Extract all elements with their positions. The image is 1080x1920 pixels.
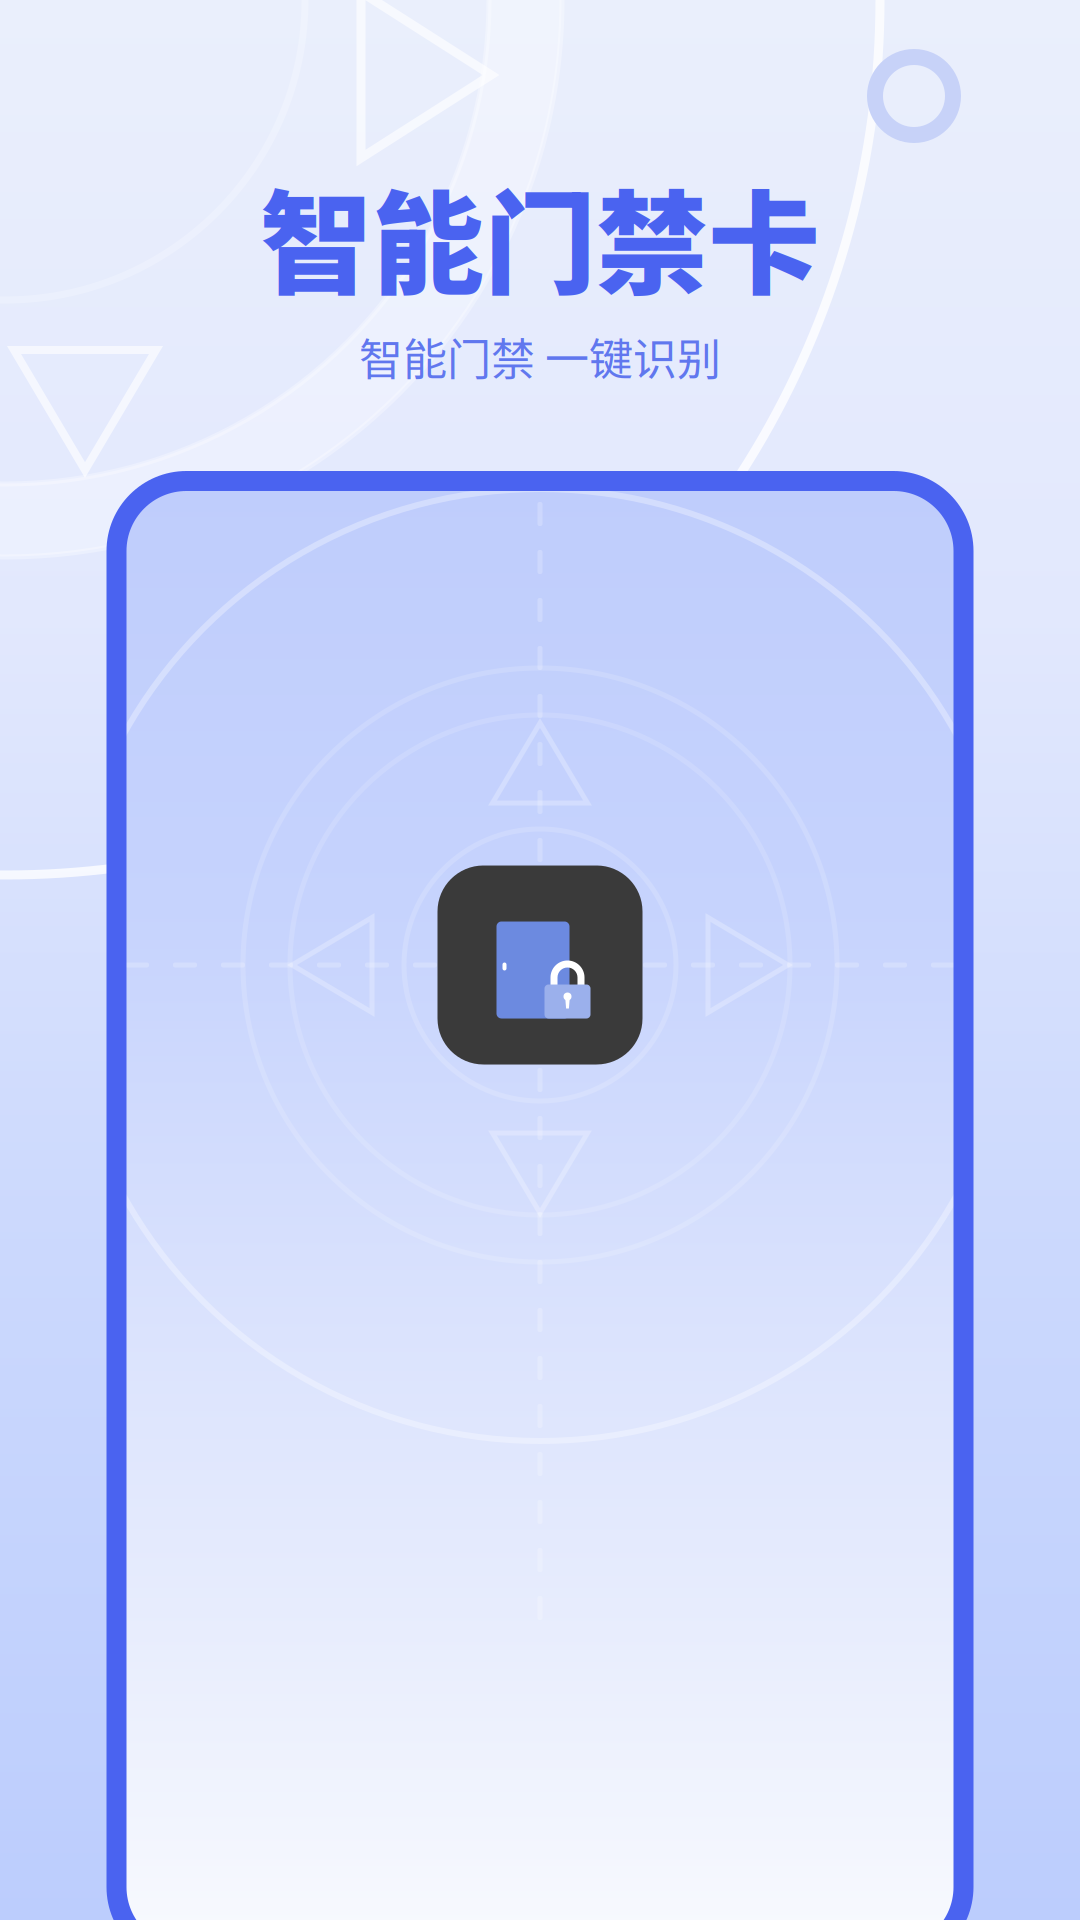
staticText: 智能门禁卡 xyxy=(260,155,820,317)
staticText: 智能门禁 一键识别 xyxy=(359,324,721,388)
button[interactable]: 智能门禁卡 xyxy=(116,481,963,1920)
